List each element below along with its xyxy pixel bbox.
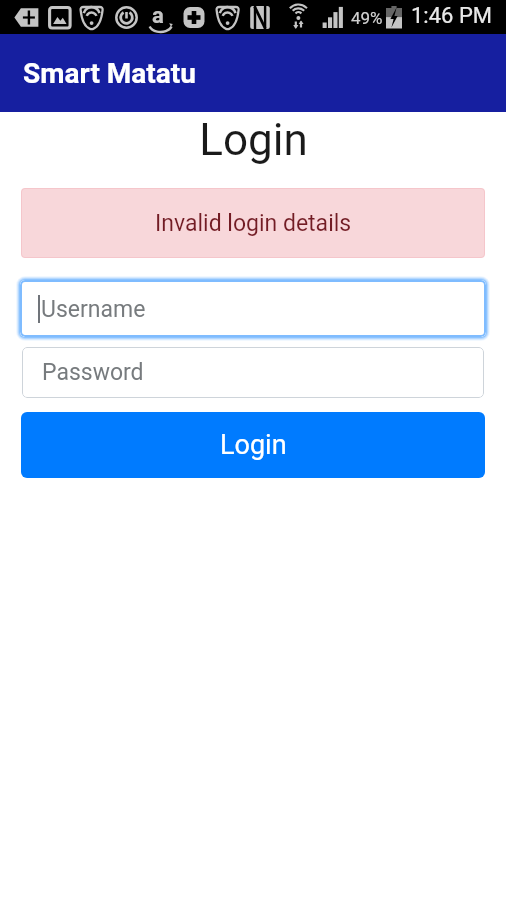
staticText: Username [41,296,146,323]
staticText: Login [199,114,308,166]
staticText: Invalid login details [155,210,352,237]
button[interactable]: Username [20,280,486,337]
staticText: Smart Matatu [23,57,196,90]
staticText: Login [220,429,287,461]
staticText: 1:46 PM [411,3,492,29]
staticText: 49% [351,8,383,28]
staticText: Password [42,359,144,386]
button[interactable]: Login [21,412,485,478]
other: Invalid login details [21,188,485,258]
button[interactable]: Password [22,347,484,398]
staticText: a [152,3,164,29]
